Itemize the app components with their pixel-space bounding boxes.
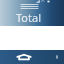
staticText: 9:41 bbox=[14, 0, 36, 3]
button[interactable]: Open navigation menu bbox=[12, 3, 46, 10]
button[interactable]: Home bbox=[0, 50, 47, 64]
button[interactable]: Cards bbox=[47, 50, 64, 64]
staticText: Total balance bbox=[16, 10, 48, 24]
